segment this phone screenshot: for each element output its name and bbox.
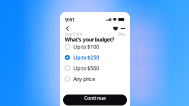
staticText: Skip xyxy=(118,31,125,37)
button[interactable]: Any price xyxy=(60,74,130,84)
button[interactable]: Up to $100 xyxy=(60,41,130,52)
button[interactable]: Save xyxy=(112,24,119,32)
button[interactable]: Back xyxy=(63,24,71,32)
button[interactable]: Up to $500 xyxy=(60,63,130,73)
staticText: Up to $100 xyxy=(73,43,99,50)
staticText: Up to $500 xyxy=(73,65,99,72)
staticText: Any price xyxy=(73,75,95,82)
staticText: What's your budget? xyxy=(65,36,115,43)
staticText: Continue xyxy=(84,94,106,102)
staticText: Up to $250 xyxy=(73,54,99,61)
staticText: Step 2 of 4 xyxy=(65,31,82,37)
button[interactable]: More options xyxy=(119,24,127,32)
button[interactable]: Skip xyxy=(118,31,125,37)
staticText: 9:41 xyxy=(65,16,75,23)
button[interactable]: Up to $250 xyxy=(60,52,130,63)
button[interactable]: Continue xyxy=(63,94,127,105)
